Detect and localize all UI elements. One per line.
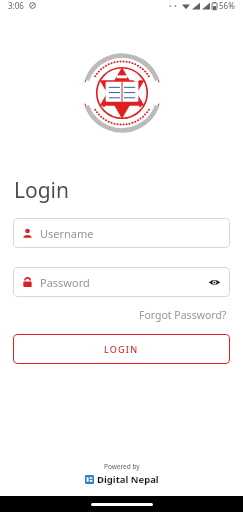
staticText: LOGIN (104, 343, 139, 355)
button[interactable]: Forgot Password? (137, 306, 229, 324)
button[interactable]: LOGIN (13, 334, 230, 364)
staticText: Login (14, 176, 70, 205)
staticText: Powered by (104, 462, 140, 471)
staticText: Digital Nepal (97, 473, 159, 486)
staticText: Password (40, 275, 90, 290)
staticText: 56% (219, 0, 235, 11)
button[interactable]: Username (13, 218, 230, 248)
button[interactable]: Toggle password visibility (208, 276, 221, 289)
button[interactable]: Password (13, 267, 230, 297)
staticText: Username (40, 226, 94, 241)
staticText: 3:06 (8, 0, 24, 11)
staticText: Forgot Password? (139, 308, 227, 322)
